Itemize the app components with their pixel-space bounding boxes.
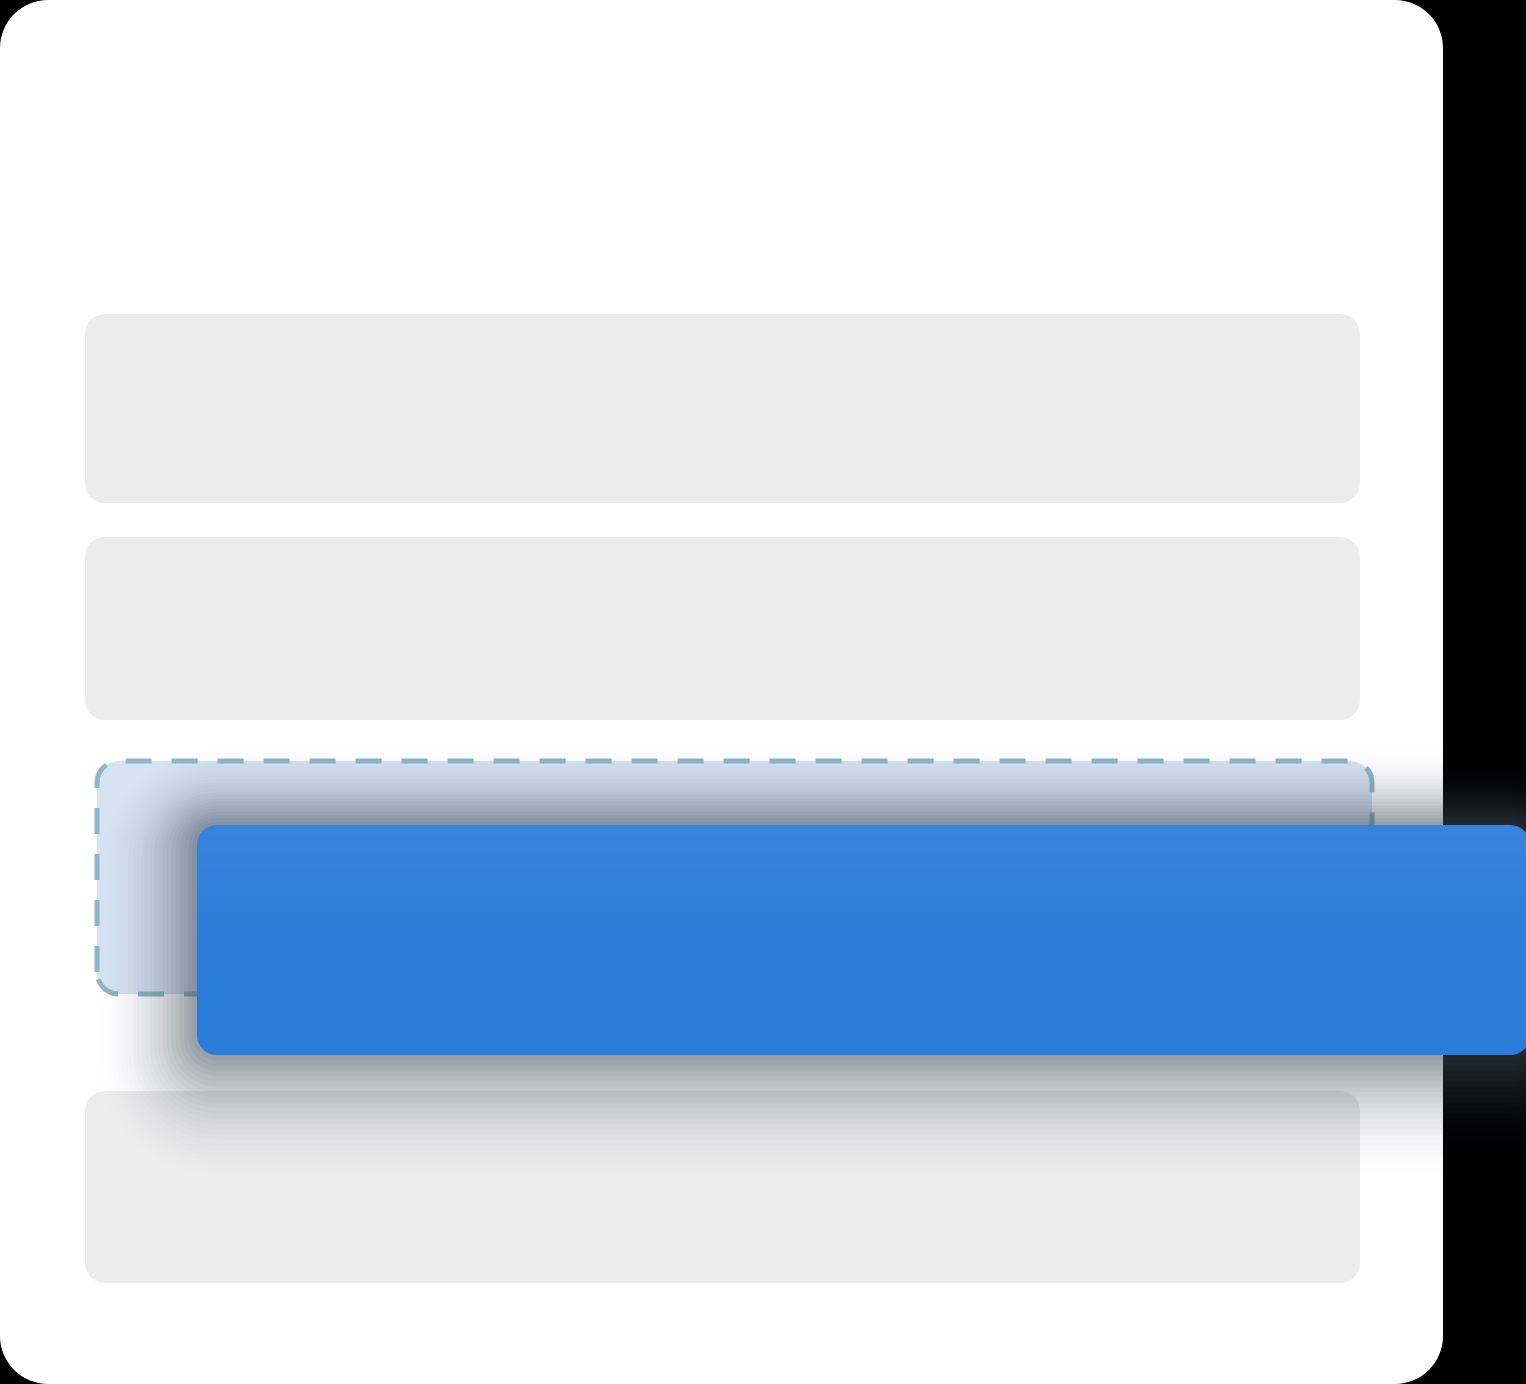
button[interactable]: Dragged list item [197,825,1526,1055]
button[interactable]: List item 4 [85,1091,1360,1283]
button[interactable]: Drop target placeholder [97,761,1372,994]
